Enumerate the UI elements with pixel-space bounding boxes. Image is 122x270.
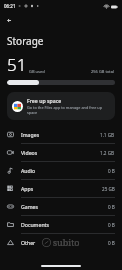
staticText: Other xyxy=(21,239,36,246)
staticText: Videos xyxy=(21,149,38,156)
staticText: 1.2 GB xyxy=(100,150,115,156)
staticText: 0 B xyxy=(108,204,115,210)
staticText: 06:21 xyxy=(4,3,16,9)
staticText: Apps xyxy=(21,185,34,192)
button[interactable]: Free up space xyxy=(7,92,115,120)
staticText: Storage xyxy=(7,34,44,48)
staticText: Audio xyxy=(21,167,36,174)
button[interactable]: Images xyxy=(0,126,122,144)
staticText: Documents xyxy=(21,221,49,228)
button[interactable]: Documents xyxy=(0,216,122,234)
staticText: Images xyxy=(21,131,40,138)
staticText: 51 xyxy=(7,53,27,76)
staticText: 25 GB xyxy=(102,186,115,192)
staticText: Go to the Files app to manage and free u… xyxy=(27,105,110,115)
staticText: 0 B xyxy=(108,240,115,246)
button[interactable]: Games xyxy=(0,198,122,216)
button[interactable]: Videos xyxy=(0,144,122,162)
button[interactable]: Apps xyxy=(0,180,122,198)
button[interactable]: Back xyxy=(3,14,16,27)
staticText: 0 B xyxy=(108,168,115,174)
staticText: Games xyxy=(21,203,38,210)
button[interactable]: Other xyxy=(0,234,122,251)
staticText: 0 B xyxy=(108,222,115,228)
staticText: GB used xyxy=(29,69,45,74)
staticText: 1.1 GB xyxy=(100,132,115,138)
staticText: Free up space xyxy=(27,97,62,104)
staticText: 256 GB total xyxy=(91,69,115,74)
button[interactable]: Audio xyxy=(0,162,122,180)
staticText: subito xyxy=(53,236,80,248)
